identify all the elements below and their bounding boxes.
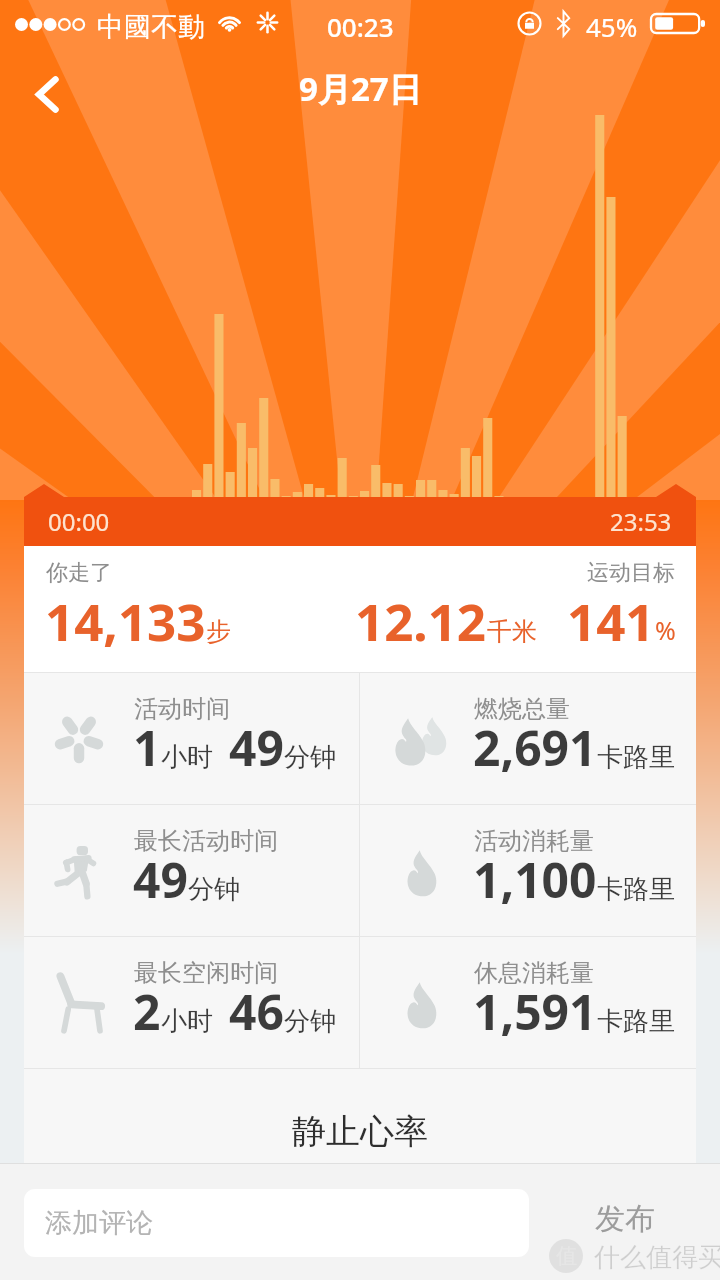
staticText: 燃烧总量 (474, 694, 570, 724)
staticText: 1,100 (473, 847, 597, 912)
staticText: 活动时间 (134, 694, 230, 724)
staticText: 发布 (595, 1200, 655, 1238)
staticText: 卡路里 (597, 1005, 675, 1038)
staticText: 添加评论 (45, 1206, 153, 1240)
staticText: 活动消耗量 (474, 826, 594, 856)
button[interactable]: 发布 (530, 1189, 720, 1257)
staticText: 分钟 (188, 873, 240, 906)
staticText: 00:00 (48, 505, 110, 538)
staticText: 小时 (161, 1005, 213, 1038)
staticText: 卡路里 (597, 741, 675, 774)
staticText: 2,691 (473, 715, 597, 780)
staticText: 00:23 (327, 9, 394, 44)
button[interactable]: Back (16, 64, 76, 124)
staticText: 休息消耗量 (474, 958, 594, 988)
staticText: 9月27日 (299, 66, 422, 111)
staticText: 你走了 (46, 559, 112, 587)
button[interactable]: 添加评论 (24, 1189, 529, 1257)
staticText: 1,591 (473, 979, 597, 1044)
staticText: 运动目标 (587, 559, 675, 587)
staticText: 步 (206, 616, 231, 647)
staticText: 14,133 (45, 586, 206, 655)
staticText: 最长空闲时间 (134, 958, 278, 988)
staticText: % (655, 613, 676, 647)
staticText: 分钟 (284, 741, 336, 774)
staticText: 千米 (487, 616, 537, 647)
staticText: 2 (133, 979, 161, 1044)
staticText: 什么值得买 (594, 1241, 720, 1274)
staticText: 23:53 (610, 505, 672, 538)
staticText: 小时 (161, 741, 213, 774)
staticText: 最长活动时间 (134, 826, 278, 856)
staticText: 分钟 (284, 1005, 336, 1038)
staticText: 中國不動 (97, 10, 205, 44)
staticText: 49 (229, 715, 284, 780)
staticText: 1 (133, 715, 161, 780)
staticText: 46 (229, 979, 284, 1044)
staticText: 12.12 (355, 586, 487, 655)
staticText: 49 (133, 847, 188, 912)
staticText: 本阶段平均静止心率 (270, 1163, 450, 1179)
button[interactable]: 活动时间 (24, 673, 359, 804)
button[interactable]: 最长空闲时间 (24, 937, 359, 1068)
staticText: 卡路里 (597, 873, 675, 906)
staticText: 141 (567, 586, 655, 655)
button[interactable]: 活动消耗量 (360, 805, 696, 936)
button[interactable]: 燃烧总量 (360, 673, 696, 804)
button[interactable]: 休息消耗量 (360, 937, 696, 1068)
staticText: 静止心率 (292, 1110, 428, 1153)
staticText: 45% (586, 9, 638, 44)
button[interactable]: 最长活动时间 (24, 805, 359, 936)
